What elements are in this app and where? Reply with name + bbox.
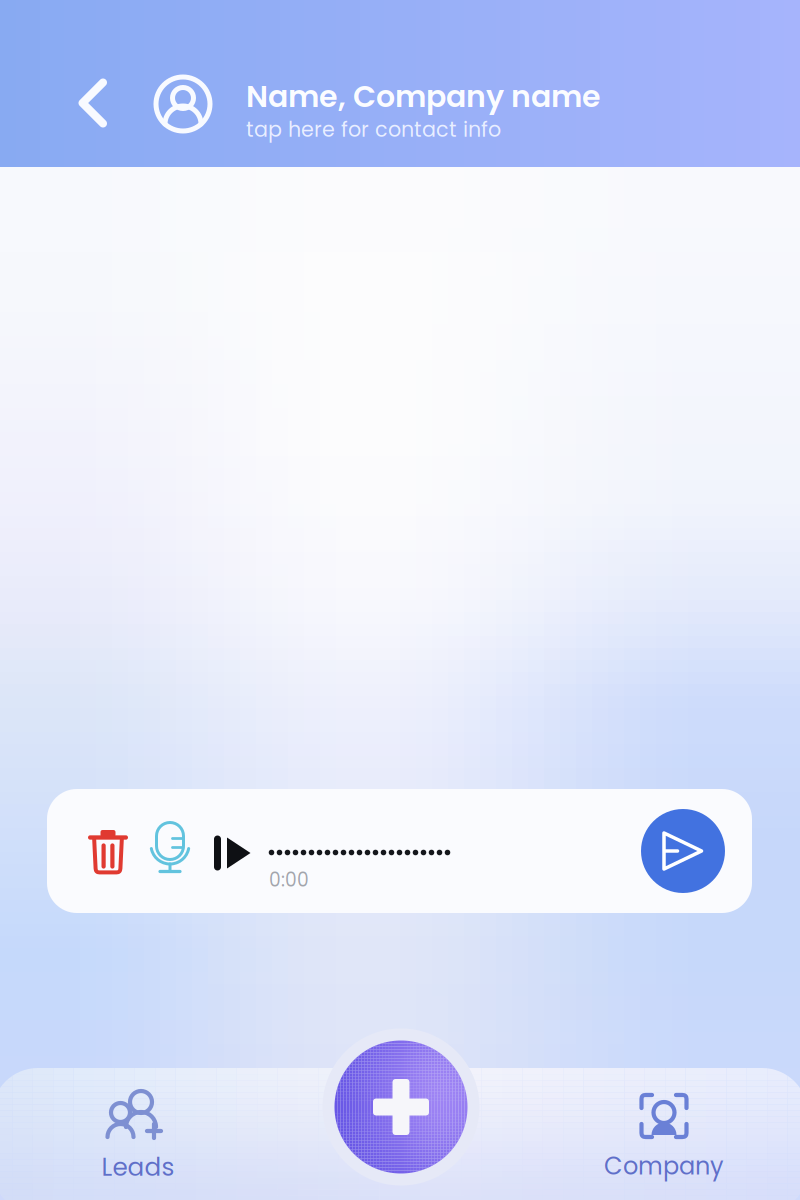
button[interactable]: Leads	[38, 1077, 238, 1197]
button[interactable]: Delete recording	[77, 812, 139, 890]
button[interactable]: Back	[56, 53, 130, 153]
staticText: Leads	[101, 1150, 174, 1184]
button[interactable]: Send	[641, 809, 725, 893]
button[interactable]: Record	[138, 807, 202, 887]
staticText: Company	[604, 1149, 724, 1183]
staticText: tap here for contact info	[246, 115, 501, 144]
button[interactable]: Company	[554, 1077, 774, 1197]
button[interactable]: Name, Company name	[154, 54, 784, 154]
button[interactable]: Play	[207, 820, 259, 886]
button[interactable]: Add	[321, 1027, 481, 1187]
staticText: 0:00	[269, 867, 309, 893]
staticText: Name, Company name	[246, 75, 601, 117]
